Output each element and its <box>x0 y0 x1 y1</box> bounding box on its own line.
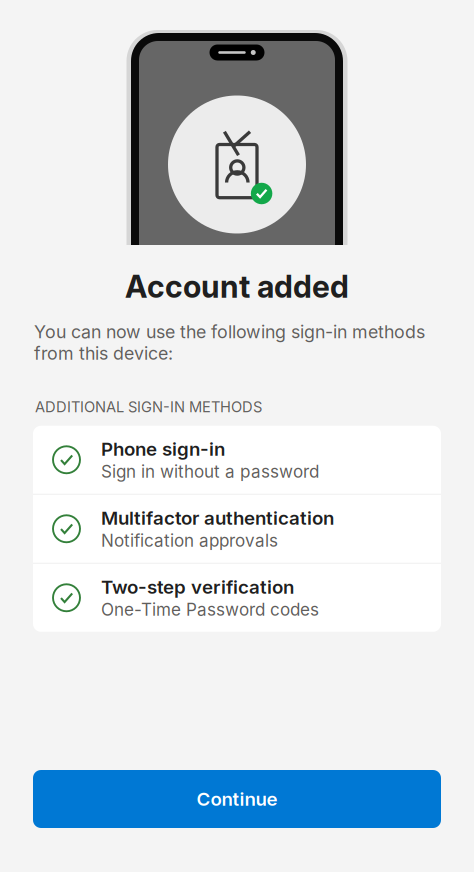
staticText: Multifactor authentication <box>101 507 334 529</box>
staticText: Two-step verification <box>101 576 294 598</box>
staticText: ADDITIONAL SIGN-IN METHODS <box>35 398 262 416</box>
staticText: Notification approvals <box>101 530 278 551</box>
staticText: Sign in without a password <box>101 461 319 482</box>
button[interactable]: Multifactor authentication <box>33 495 441 563</box>
button[interactable]: Two-step verification <box>33 564 441 632</box>
staticText: Account added <box>125 268 349 305</box>
button[interactable]: Continue <box>33 770 441 828</box>
button[interactable]: Phone sign-in <box>33 426 441 494</box>
staticText: You can now use the following sign-in me… <box>34 321 425 364</box>
staticText: Continue <box>196 788 277 810</box>
staticText: Phone sign-in <box>101 438 225 460</box>
staticText: One-Time Password codes <box>101 599 319 620</box>
